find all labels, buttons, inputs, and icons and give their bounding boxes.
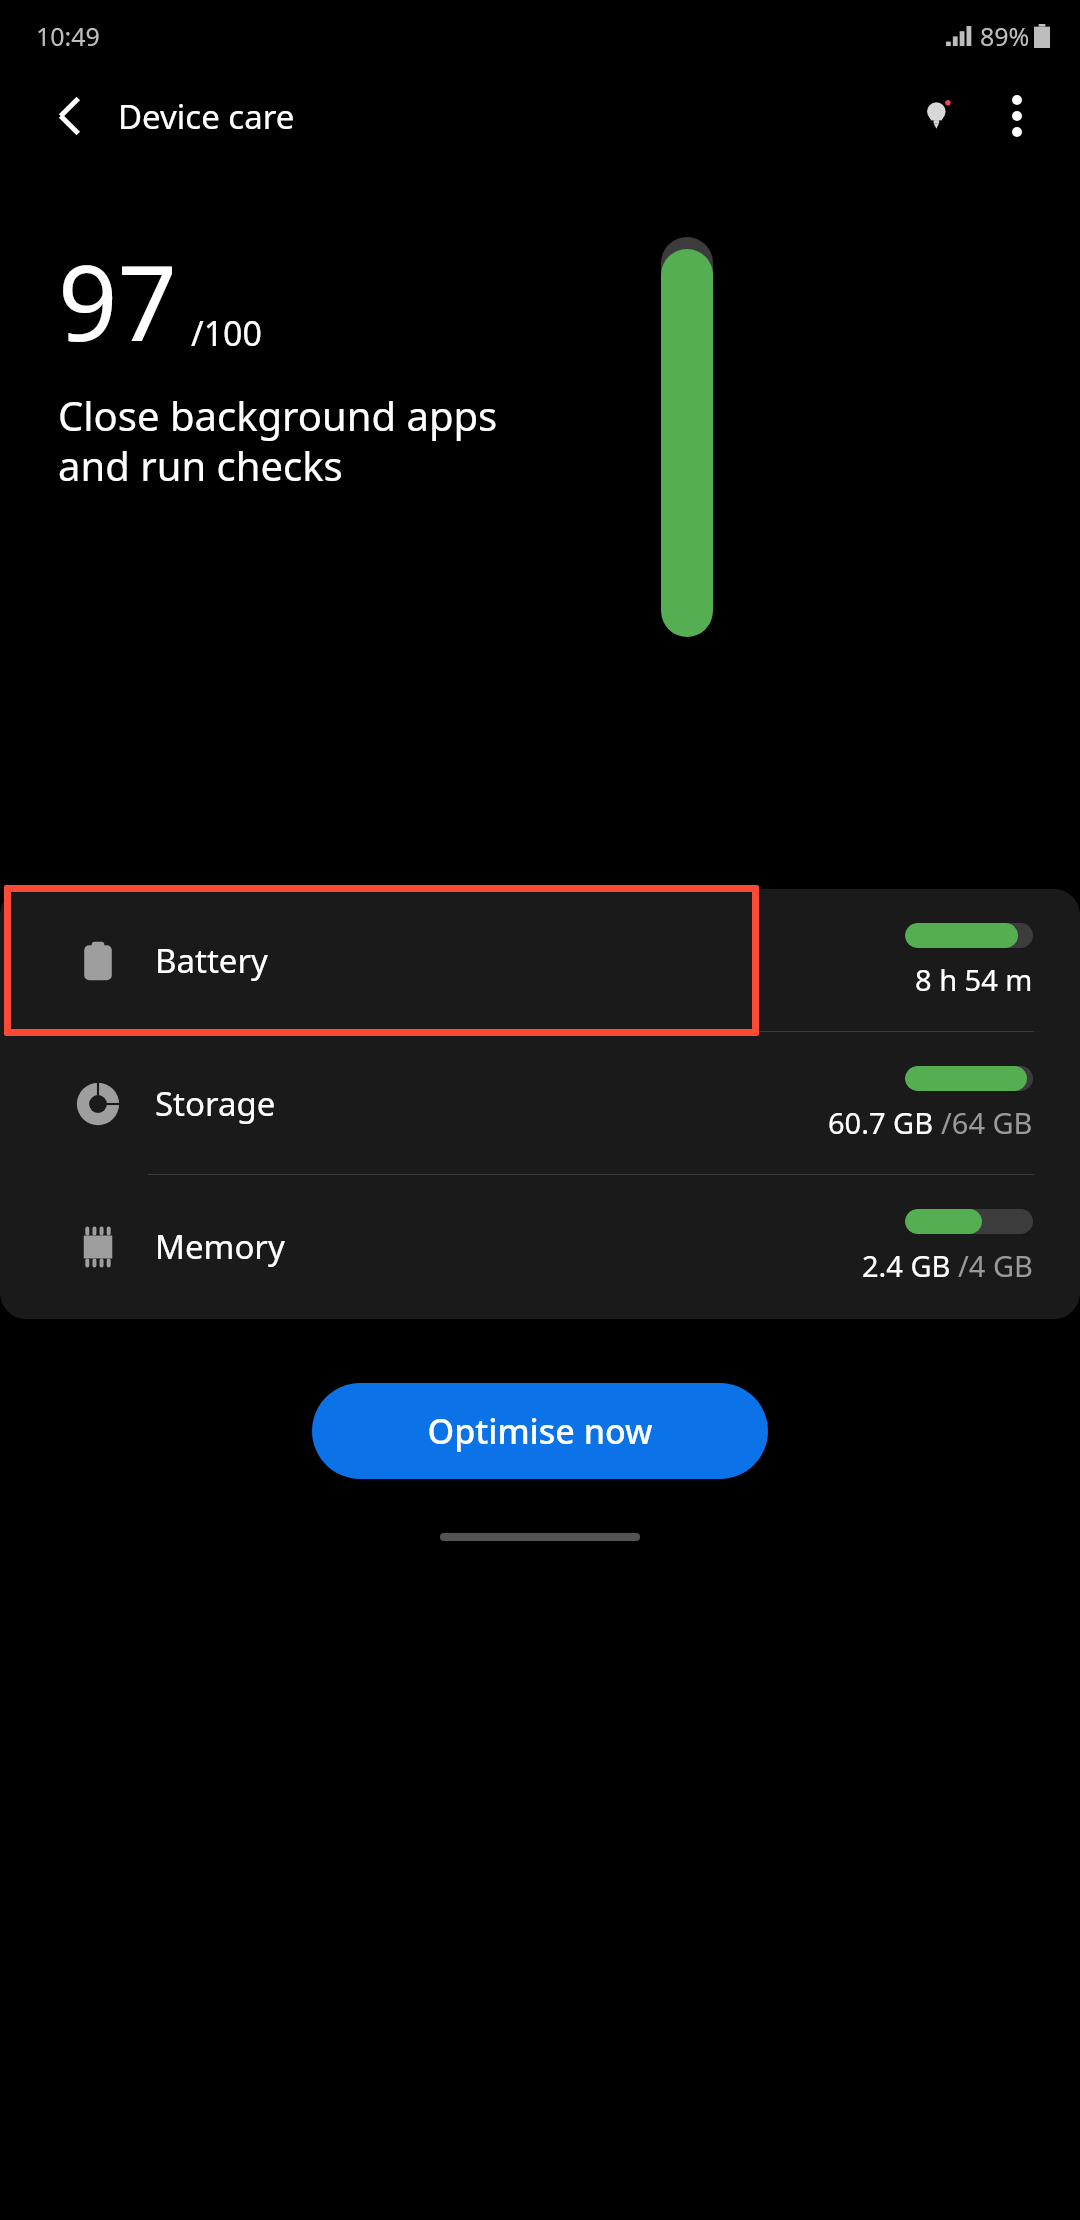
staticText: Optimise now — [427, 1408, 653, 1454]
staticText: 10:49 — [36, 19, 100, 53]
button[interactable]: Tips — [900, 77, 978, 155]
staticText: /100 — [191, 310, 262, 356]
button[interactable]: Memory — [0, 1175, 1080, 1318]
button[interactable]: Battery — [0, 889, 1080, 1032]
button[interactable]: Back — [44, 90, 96, 142]
staticText: 60.7 GB — [828, 1103, 941, 1142]
staticText: Battery — [155, 938, 268, 983]
staticText: 89% — [980, 19, 1030, 53]
staticText: Memory — [155, 1224, 285, 1269]
staticText: 2.4 GB — [862, 1246, 958, 1285]
staticText: /4 GB — [958, 1246, 1033, 1285]
staticText: Device care — [118, 94, 295, 139]
button[interactable]: Optimise now — [312, 1383, 768, 1479]
staticText: 8 h 54 m — [915, 960, 1033, 999]
staticText: Storage — [155, 1081, 276, 1126]
button[interactable]: More options — [978, 77, 1056, 155]
button[interactable]: Storage — [0, 1032, 1080, 1175]
staticText: Close background apps and run checks — [58, 388, 498, 493]
staticText: 97 — [58, 230, 177, 372]
staticText: /64 GB — [941, 1103, 1033, 1142]
